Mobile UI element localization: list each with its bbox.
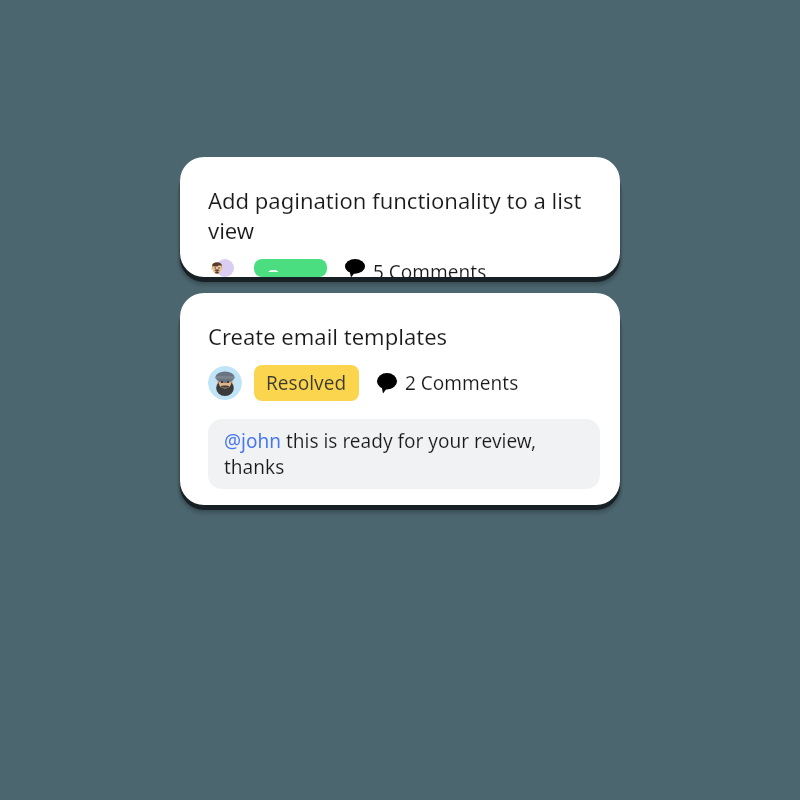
staticText: Resolved bbox=[266, 370, 347, 396]
button[interactable]: Open bbox=[254, 259, 327, 277]
button[interactable]: Comments bbox=[377, 370, 519, 396]
button[interactable]: Comments bbox=[345, 259, 487, 277]
staticText: Open bbox=[266, 264, 315, 272]
other: Assignee avatar bbox=[208, 366, 242, 400]
other: Comments bbox=[345, 259, 365, 277]
button[interactable]: Create email templates bbox=[180, 293, 620, 505]
staticText: 2 Comments bbox=[405, 370, 519, 396]
other: Comments bbox=[377, 373, 397, 393]
button[interactable]: Add pagination functionality to a list v… bbox=[180, 157, 620, 277]
staticText: Create email templates bbox=[208, 321, 448, 351]
staticText: 5 Comments bbox=[373, 259, 487, 277]
button[interactable]: @john this is ready for your review, tha… bbox=[208, 419, 600, 489]
staticText: @john this is ready for your review, tha… bbox=[224, 428, 584, 480]
staticText: Add pagination functionality to a list v… bbox=[208, 185, 592, 245]
other: Assignee avatar bbox=[208, 259, 242, 277]
button[interactable]: Resolved bbox=[254, 365, 359, 401]
